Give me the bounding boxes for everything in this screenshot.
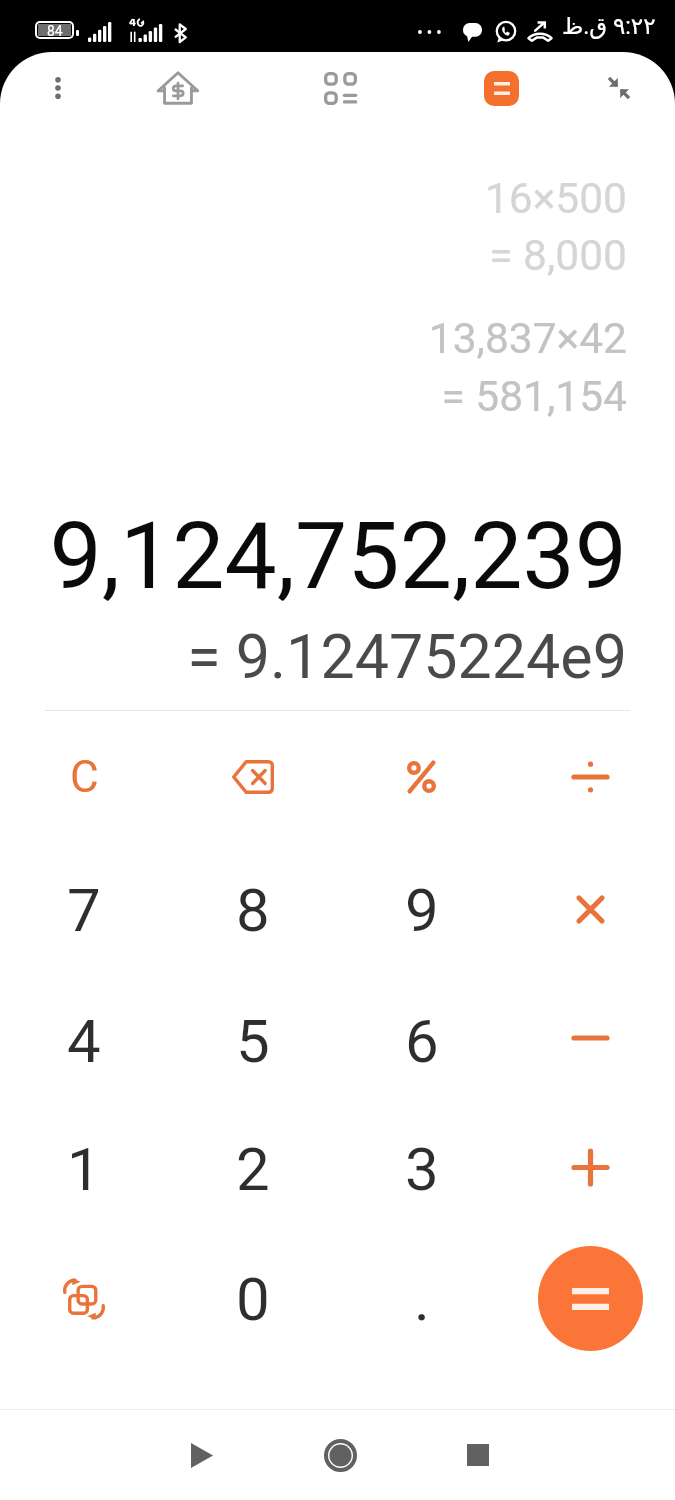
button[interactable]: Decimal point xyxy=(337,1233,506,1364)
staticText: = 581,154 xyxy=(441,372,627,422)
button[interactable]: Convert xyxy=(0,1233,168,1364)
staticText: 0 xyxy=(236,1264,270,1334)
staticText: 16×500 xyxy=(484,174,627,224)
staticText: ٩:٢٢ ق.ظ xyxy=(562,13,656,40)
button[interactable]: 1 xyxy=(0,1103,168,1234)
button[interactable]: Unit converter xyxy=(241,0,440,130)
button[interactable]: 9 xyxy=(337,844,506,975)
staticText: 6 xyxy=(405,1006,439,1076)
button[interactable]: Recents xyxy=(409,1410,547,1500)
staticText: = 9.12475224e9 xyxy=(187,621,627,692)
button[interactable]: Multiply xyxy=(506,844,675,975)
button[interactable]: 8 xyxy=(168,844,337,975)
staticText: 84 xyxy=(47,23,63,37)
staticText: 4 xyxy=(67,1006,101,1076)
button[interactable]: Calculator xyxy=(440,0,562,130)
staticText: 3 xyxy=(405,1134,439,1204)
staticText: = 8,000 xyxy=(489,231,627,281)
button[interactable]: Percent xyxy=(337,711,506,842)
staticText: 1 xyxy=(67,1134,101,1204)
staticText: 8 xyxy=(236,875,270,945)
button[interactable]: Minus xyxy=(506,975,675,1106)
button[interactable]: 2 xyxy=(168,1103,337,1234)
button[interactable]: Clear xyxy=(0,711,168,842)
button[interactable]: Backspace xyxy=(168,711,337,842)
button[interactable]: Divide xyxy=(506,711,675,842)
button[interactable]: Plus xyxy=(506,1103,675,1234)
button[interactable]: 6 xyxy=(337,975,506,1106)
button[interactable]: More options xyxy=(0,0,115,130)
staticText: . xyxy=(414,1264,430,1334)
button[interactable]: 4 xyxy=(0,975,168,1106)
button[interactable]: Equals xyxy=(506,1233,675,1364)
button[interactable]: Collapse xyxy=(562,0,675,130)
staticText: 2 xyxy=(236,1134,270,1204)
staticText: 9,124,752,239 xyxy=(49,502,627,611)
button[interactable]: 7 xyxy=(0,844,168,975)
button[interactable]: 3 xyxy=(337,1103,506,1234)
button[interactable]: Home xyxy=(271,1410,409,1500)
button[interactable]: 5 xyxy=(168,975,337,1106)
staticText: 5 xyxy=(236,1006,270,1076)
staticText: 9 xyxy=(405,875,439,945)
staticText: 7 xyxy=(67,875,101,945)
staticText: 13,837×42 xyxy=(428,314,627,364)
button[interactable]: 0 xyxy=(168,1233,337,1364)
staticText: C xyxy=(70,751,99,803)
button[interactable]: Loan calculator xyxy=(115,0,241,130)
button[interactable]: Back xyxy=(133,1410,271,1500)
